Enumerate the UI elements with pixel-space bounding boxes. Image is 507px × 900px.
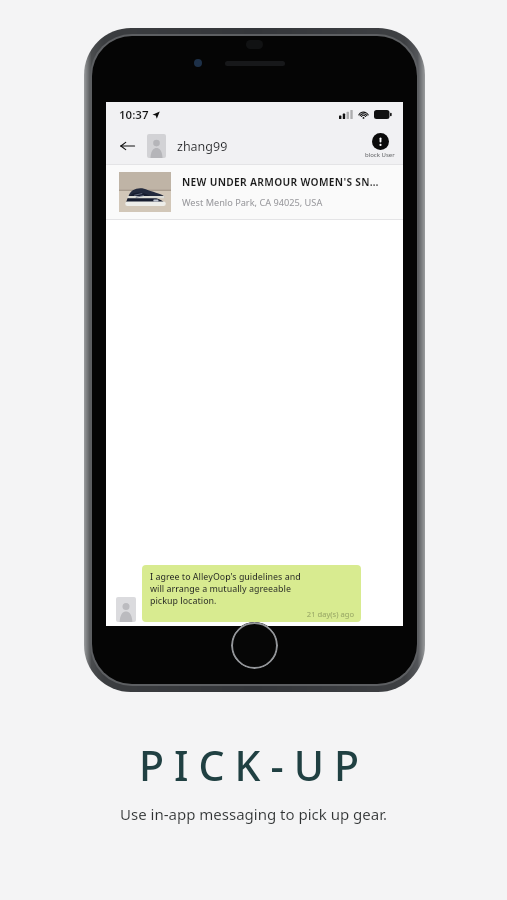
staticText: PICK-UP bbox=[139, 737, 369, 793]
staticText: 21 day(s) ago bbox=[150, 609, 354, 619]
staticText: Use in-app messaging to pick up gear. bbox=[120, 804, 387, 824]
staticText: I agree to AlleyOop's guidelines and wil… bbox=[150, 571, 301, 607]
staticText: zhang99 bbox=[177, 138, 228, 155]
button[interactable]: zhang99 bbox=[147, 134, 228, 158]
button[interactable]: NEW UNDER ARMOUR WOMEN'S SN… bbox=[106, 165, 403, 219]
staticText: block User bbox=[365, 151, 395, 159]
button[interactable]: I agree to AlleyOop's guidelines and wil… bbox=[142, 565, 361, 622]
staticText: West Menlo Park, CA 94025, USA bbox=[182, 196, 323, 209]
staticText: 10:37 bbox=[119, 107, 149, 123]
staticText: NEW UNDER ARMOUR WOMEN'S SN… bbox=[182, 175, 379, 189]
button[interactable]: Block User bbox=[365, 133, 395, 159]
button[interactable]: Back bbox=[116, 135, 138, 157]
button[interactable]: Home bbox=[231, 622, 278, 669]
